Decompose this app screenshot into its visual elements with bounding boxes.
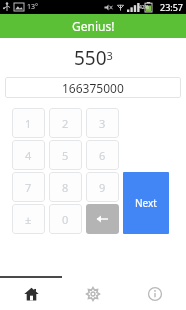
button[interactable]: 5 [49, 140, 82, 170]
staticText: Next [135, 196, 157, 210]
staticText: 13° [27, 2, 39, 12]
staticText: 3 [99, 116, 106, 131]
button[interactable]: Settings [62, 278, 124, 310]
staticText: 5503 [74, 45, 113, 71]
button[interactable]: 0 [49, 204, 82, 234]
staticText: 9 [99, 180, 106, 195]
staticText: 23:57 [160, 1, 184, 13]
button[interactable]: ± [12, 204, 45, 234]
staticText: ± [25, 212, 32, 227]
staticText: 4 [25, 148, 32, 163]
button[interactable]: 1 [12, 108, 45, 138]
button[interactable]: 8 [49, 172, 82, 202]
button[interactable]: 3 [86, 108, 119, 138]
button[interactable]: 9 [86, 172, 119, 202]
staticText: 42% [139, 4, 149, 11]
button[interactable]: 4 [12, 140, 45, 170]
button[interactable]: Home [0, 278, 62, 310]
staticText: 1 [25, 116, 32, 131]
button[interactable]: 7 [12, 172, 45, 202]
staticText: 0 [62, 212, 69, 227]
staticText: Genius! [72, 18, 115, 34]
staticText: 2 [62, 116, 69, 131]
button[interactable]: 6 [86, 140, 119, 170]
staticText: 7 [25, 180, 32, 195]
button[interactable]: Backspace [86, 204, 119, 234]
staticText: 166375000 [62, 80, 124, 96]
button[interactable]: 166375000 [5, 77, 181, 98]
button[interactable]: 2 [49, 108, 82, 138]
button[interactable]: Info [124, 278, 186, 310]
staticText: 6 [99, 148, 106, 163]
staticText: 5 [62, 148, 69, 163]
staticText: 8 [62, 180, 69, 195]
button[interactable]: Next [123, 172, 169, 234]
